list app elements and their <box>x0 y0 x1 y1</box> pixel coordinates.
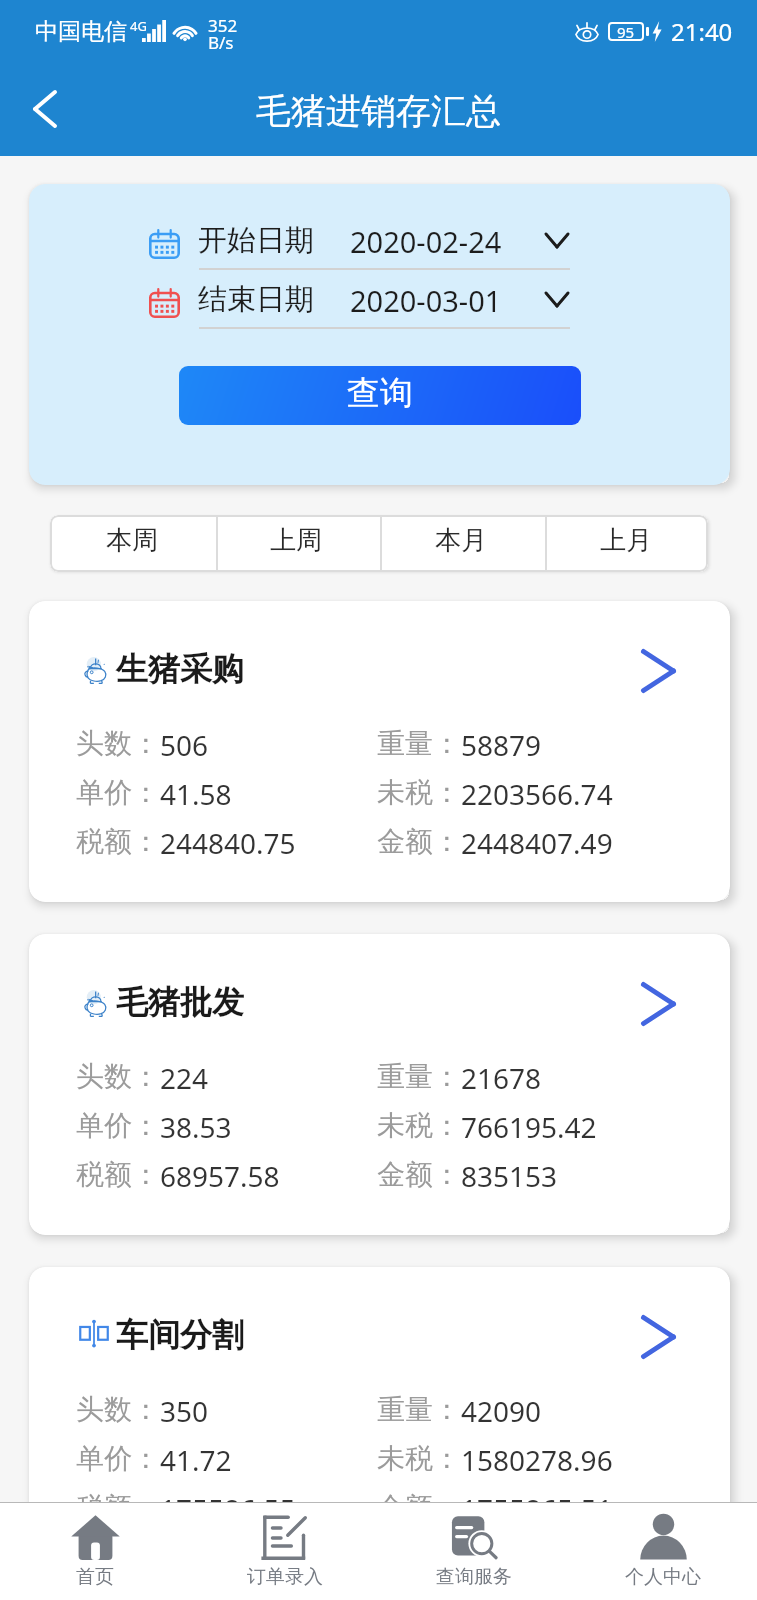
staticText: 结束日期 <box>198 281 314 318</box>
staticText: 金额： <box>377 1157 461 1192</box>
staticText: 未税： <box>377 1441 461 1476</box>
staticText: 1755865.51 <box>461 1490 613 1528</box>
staticText: 重量： <box>377 726 461 761</box>
staticText: 244840.75 <box>160 824 296 862</box>
staticText: 重量： <box>377 1392 461 1427</box>
staticText: 未税： <box>377 1108 461 1143</box>
staticText: 本月 <box>435 524 487 557</box>
button[interactable]: 本周 <box>50 515 214 572</box>
button[interactable]: 毛猪批发 <box>29 934 730 1235</box>
staticText: 350 <box>160 1392 209 1430</box>
staticText: 835153 <box>461 1157 558 1195</box>
staticText: 766195.42 <box>461 1108 597 1146</box>
staticText: 头数： <box>76 1059 160 1094</box>
staticText: 58879 <box>461 726 542 764</box>
staticText: 头数： <box>76 1392 160 1427</box>
staticText: 头数： <box>76 726 160 761</box>
button[interactable]: 上月 <box>543 515 708 572</box>
button[interactable]: 车间分割 <box>29 1267 730 1568</box>
staticText: 单价： <box>76 775 160 810</box>
staticText: 中国电信 <box>35 17 127 46</box>
staticText: 金额： <box>377 1490 461 1525</box>
staticText: 查询 <box>347 372 413 414</box>
staticText: 订单录入 <box>247 1565 323 1589</box>
staticText: 生猪采购 <box>116 649 244 689</box>
staticText: 首页 <box>76 1565 114 1589</box>
staticText: 224 <box>160 1059 209 1097</box>
staticText: 42090 <box>461 1392 542 1430</box>
staticText: 毛猪批发 <box>116 982 244 1022</box>
button[interactable]: 生猪采购 <box>29 601 730 902</box>
staticText: 金额： <box>377 824 461 859</box>
button[interactable]: Back <box>8 72 82 146</box>
button[interactable]: 查询 <box>179 366 581 425</box>
staticText: 2203566.74 <box>461 775 613 813</box>
staticText: 上周 <box>270 524 322 557</box>
staticText: 95 <box>617 22 635 41</box>
staticText: B/s <box>208 31 234 54</box>
staticText: 2448407.49 <box>461 824 613 862</box>
staticText: 1580278.96 <box>461 1441 613 1479</box>
staticText: 单价： <box>76 1108 160 1143</box>
staticText: 查询服务 <box>436 1565 512 1589</box>
staticText: 重量： <box>377 1059 461 1094</box>
staticText: 个人中心 <box>625 1565 701 1589</box>
staticText: 未税： <box>377 775 461 810</box>
staticText: 352 <box>208 14 238 37</box>
button[interactable]: 个人中心 <box>568 1503 757 1600</box>
staticText: 2020-03-01 <box>350 281 502 320</box>
button[interactable]: 订单录入 <box>190 1503 379 1600</box>
staticText: 68957.58 <box>160 1157 280 1195</box>
staticText: 税额： <box>76 824 160 859</box>
staticText: 上月 <box>600 524 652 557</box>
staticText: 21678 <box>461 1059 542 1097</box>
staticText: 本周 <box>106 524 158 557</box>
staticText: 41.58 <box>160 775 232 813</box>
staticText: 175586.55 <box>160 1490 296 1528</box>
staticText: 506 <box>160 726 209 764</box>
staticText: 开始日期 <box>198 222 314 259</box>
button[interactable]: 结束日期 <box>147 275 572 327</box>
staticText: 2020-02-24 <box>350 222 502 261</box>
staticText: 税额： <box>76 1490 160 1525</box>
staticText: 车间分割 <box>116 1315 244 1355</box>
staticText: 毛猪进销存汇总 <box>256 89 501 133</box>
staticText: 税额： <box>76 1157 160 1192</box>
button[interactable]: 开始日期 <box>147 216 572 268</box>
button[interactable]: 上周 <box>214 515 378 572</box>
button[interactable]: 查询服务 <box>379 1503 568 1600</box>
staticText: 21:40 <box>671 15 733 48</box>
staticText: 41.72 <box>160 1441 232 1479</box>
staticText: 单价： <box>76 1441 160 1476</box>
button[interactable]: 首页 <box>0 1503 190 1600</box>
staticText: 4G <box>130 17 147 35</box>
button[interactable]: 本月 <box>378 515 543 572</box>
staticText: 38.53 <box>160 1108 232 1146</box>
